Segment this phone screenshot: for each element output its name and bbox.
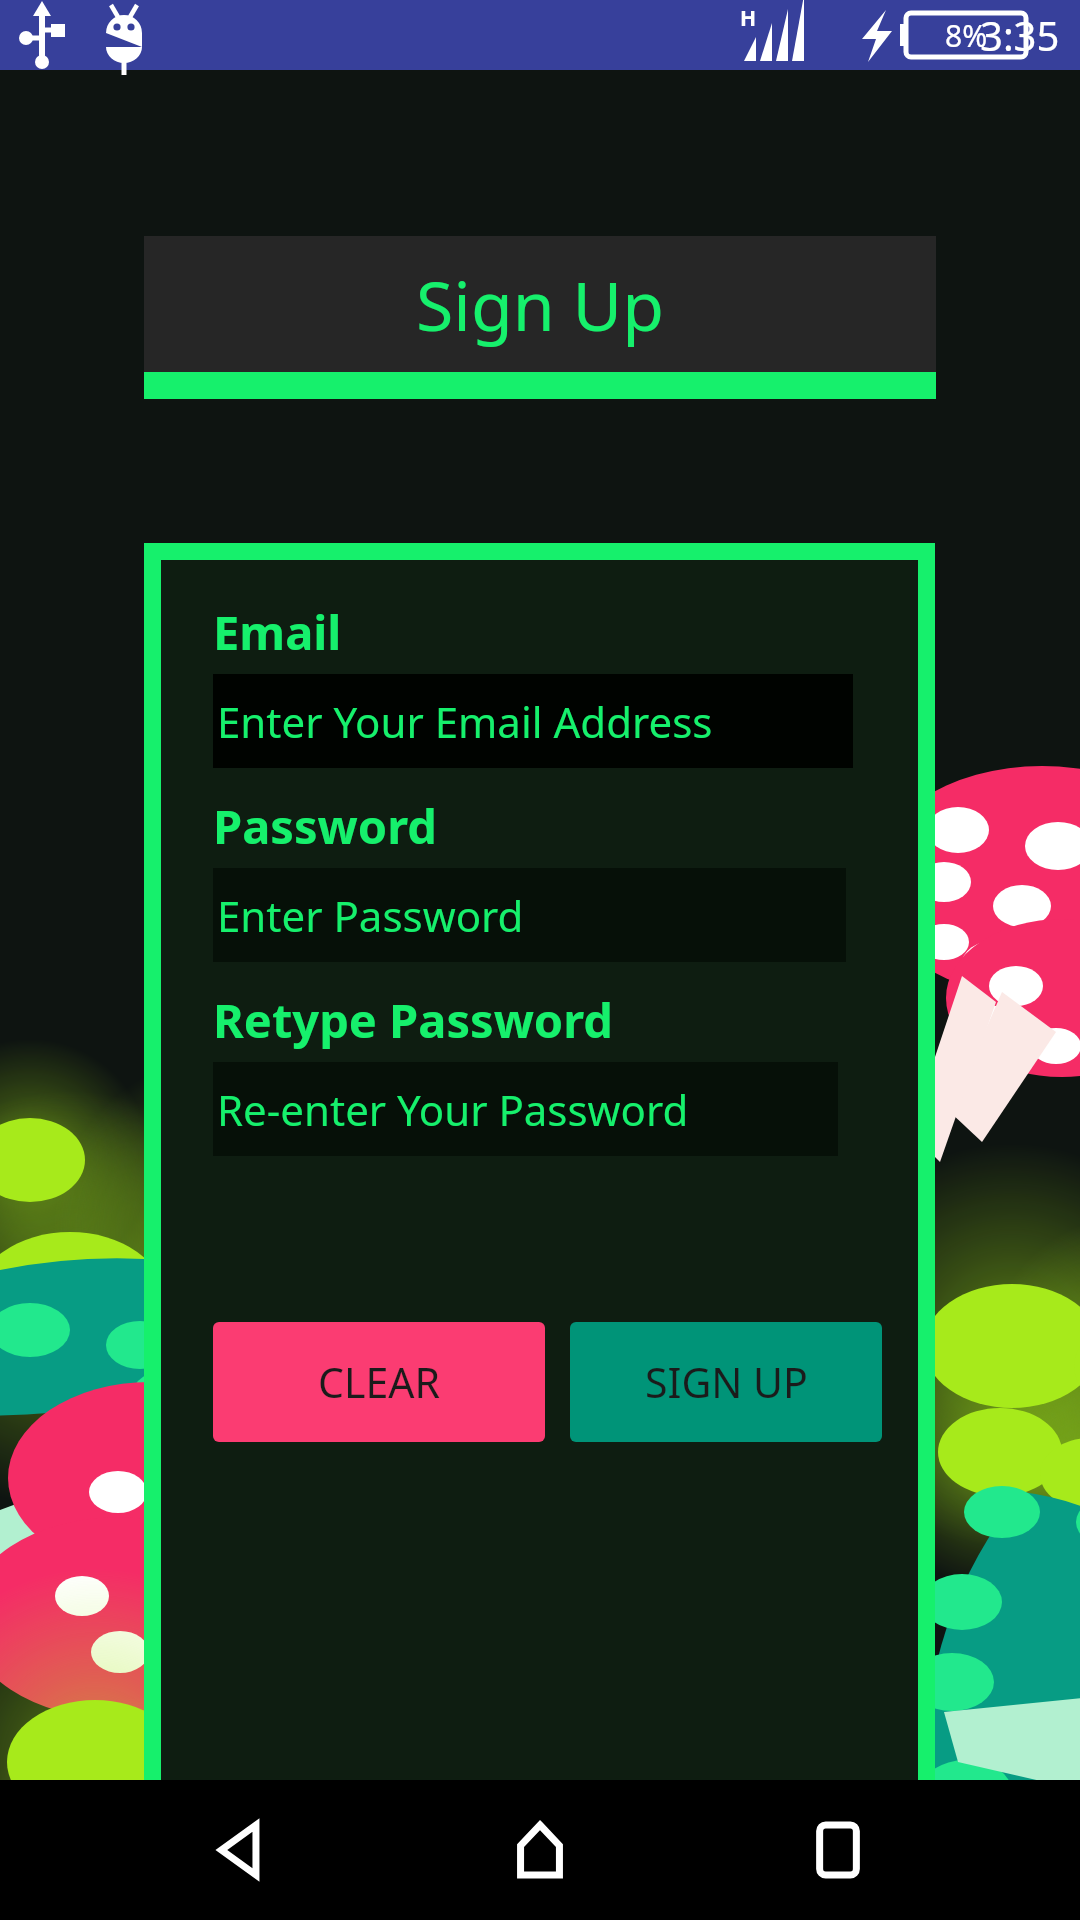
staticText: Re-enter Your Password <box>217 1081 689 1138</box>
staticText: SIGN UP <box>645 1354 808 1410</box>
button[interactable]: Recent apps <box>783 1795 893 1905</box>
staticText: Password <box>213 794 437 858</box>
staticText: 8% <box>945 15 988 56</box>
button[interactable]: Home <box>485 1795 595 1905</box>
staticText: CLEAR <box>318 1354 440 1410</box>
staticText: Enter Password <box>217 887 524 944</box>
button[interactable]: Back <box>188 1795 298 1905</box>
button[interactable]: SIGN UP <box>570 1322 882 1442</box>
staticText: Enter Your Email Address <box>217 693 713 750</box>
button[interactable]: Re-enter Your Password <box>213 1062 838 1156</box>
button[interactable]: Enter Password <box>213 868 846 962</box>
staticText: Sign Up <box>416 258 664 351</box>
staticText: Email <box>213 600 342 664</box>
button[interactable]: Sign Up <box>144 236 936 399</box>
staticText: 3:35 <box>980 8 1060 62</box>
staticText: Retype Password <box>213 988 614 1052</box>
staticText: H <box>740 4 757 33</box>
button[interactable]: Enter Your Email Address <box>213 674 853 768</box>
button[interactable]: CLEAR <box>213 1322 545 1442</box>
